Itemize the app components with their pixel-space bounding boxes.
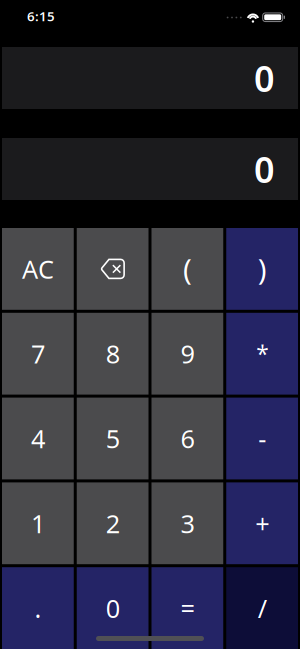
staticText: 4 — [31, 422, 45, 455]
staticText: 3 — [180, 506, 194, 540]
button[interactable]: 3 — [151, 482, 223, 564]
button[interactable]: ( — [151, 228, 223, 310]
button[interactable]: 2 — [77, 482, 149, 564]
button[interactable]: 4 — [2, 398, 74, 479]
staticText: . — [34, 591, 41, 625]
staticText: 5 — [106, 422, 120, 455]
staticText: 0 — [254, 54, 275, 102]
button[interactable]: Delete — [77, 228, 149, 310]
staticText: AC — [22, 252, 54, 286]
button[interactable]: 7 — [2, 313, 74, 395]
button[interactable]: AC — [2, 228, 74, 310]
button[interactable]: 9 — [151, 313, 223, 395]
button[interactable]: 5 — [77, 398, 149, 479]
button[interactable]: 8 — [77, 313, 149, 395]
button[interactable]: - — [226, 398, 298, 479]
staticText: 8 — [106, 337, 120, 370]
staticText: = — [180, 591, 194, 625]
button[interactable]: + — [226, 482, 298, 564]
button[interactable]: = — [151, 567, 223, 649]
button[interactable]: . — [2, 567, 74, 649]
staticText: 9 — [180, 337, 194, 370]
staticText: 6 — [180, 422, 194, 455]
staticText: 6:15 — [27, 7, 55, 25]
staticText: ) — [258, 249, 267, 288]
staticText: + — [255, 506, 269, 540]
staticText: 0 — [106, 591, 120, 625]
staticText: / — [258, 591, 267, 625]
staticText: 1 — [31, 506, 45, 540]
staticText: 0 — [254, 145, 275, 193]
staticText: 7 — [31, 337, 45, 370]
staticText: - — [258, 422, 266, 455]
staticText: ( — [183, 249, 192, 288]
button[interactable]: 0 — [77, 567, 149, 649]
button[interactable]: * — [226, 313, 298, 395]
staticText: 2 — [106, 506, 120, 540]
button[interactable]: / — [226, 567, 298, 649]
button[interactable]: 6 — [151, 398, 223, 479]
staticText: * — [256, 339, 268, 369]
button[interactable]: 1 — [2, 482, 74, 564]
button[interactable]: ) — [226, 228, 298, 310]
